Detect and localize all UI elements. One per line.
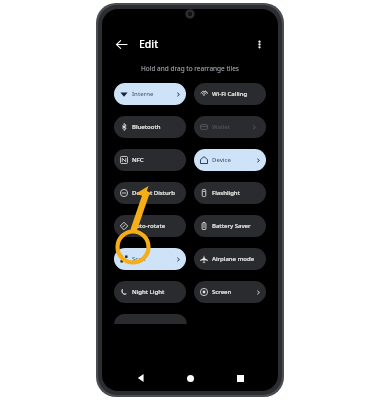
button[interactable]: Flashlight [194,182,266,204]
button[interactable]: Back [130,367,152,389]
staticText: Night Light [132,288,165,296]
staticText: Edit [139,37,159,51]
button[interactable]: Wi-Fi Calling [194,83,266,105]
staticText: NFC [132,156,144,164]
staticText: Flashlight [212,189,240,197]
staticText: Internet [132,90,154,98]
button[interactable]: Airplane mode [194,248,266,270]
staticText: Battery Saver [212,222,251,230]
staticText: Wallet [212,123,230,131]
staticText: Bluetooth [132,123,161,131]
staticText: Device co.. [212,156,234,164]
button[interactable]: Scan QR c.. [114,248,186,270]
button[interactable]: Recents [229,367,251,389]
button[interactable]: Internet [114,83,186,105]
button[interactable]: Bluetooth [114,116,186,138]
button[interactable]: More tiles [114,314,187,324]
button[interactable]: Night Light [114,281,186,303]
button[interactable]: Device co.. [194,149,266,171]
staticText: Screen rec.. [212,288,234,296]
staticText: Auto-rotate [132,222,166,230]
staticText: Hold and drag to rearrange tiles [141,64,239,73]
button[interactable]: Do Not Disturb [114,182,186,204]
button[interactable]: Screen rec.. [194,281,266,303]
button[interactable]: More options [250,35,268,53]
button[interactable]: Auto-rotate [114,215,186,237]
staticText: Do Not Disturb [132,189,176,197]
button[interactable]: Battery Saver [194,215,266,237]
staticText: Wi-Fi Calling [212,90,248,98]
button[interactable]: Wallet [194,116,266,138]
button[interactable]: Home [179,367,201,389]
staticText: Airplane mode [212,255,255,263]
staticText: Scan QR c.. [132,255,154,263]
button[interactable]: Back [112,35,130,53]
button[interactable]: NFC [114,149,186,171]
